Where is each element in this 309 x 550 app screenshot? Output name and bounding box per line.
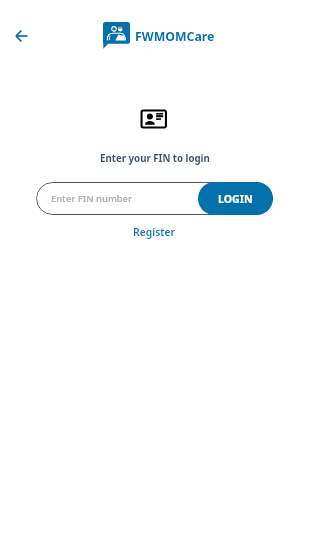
button[interactable]: Back xyxy=(10,24,34,48)
button[interactable]: Register xyxy=(129,223,180,241)
staticText: Enter FIN number xyxy=(51,192,133,205)
button[interactable]: Enter FIN number xyxy=(36,182,273,215)
staticText: Register xyxy=(133,225,176,239)
staticText: LOGIN xyxy=(218,192,253,206)
staticText: Enter your FIN to login xyxy=(100,152,210,165)
button[interactable]: LOGIN xyxy=(198,182,273,215)
staticText: FWMOMCare xyxy=(135,28,215,45)
